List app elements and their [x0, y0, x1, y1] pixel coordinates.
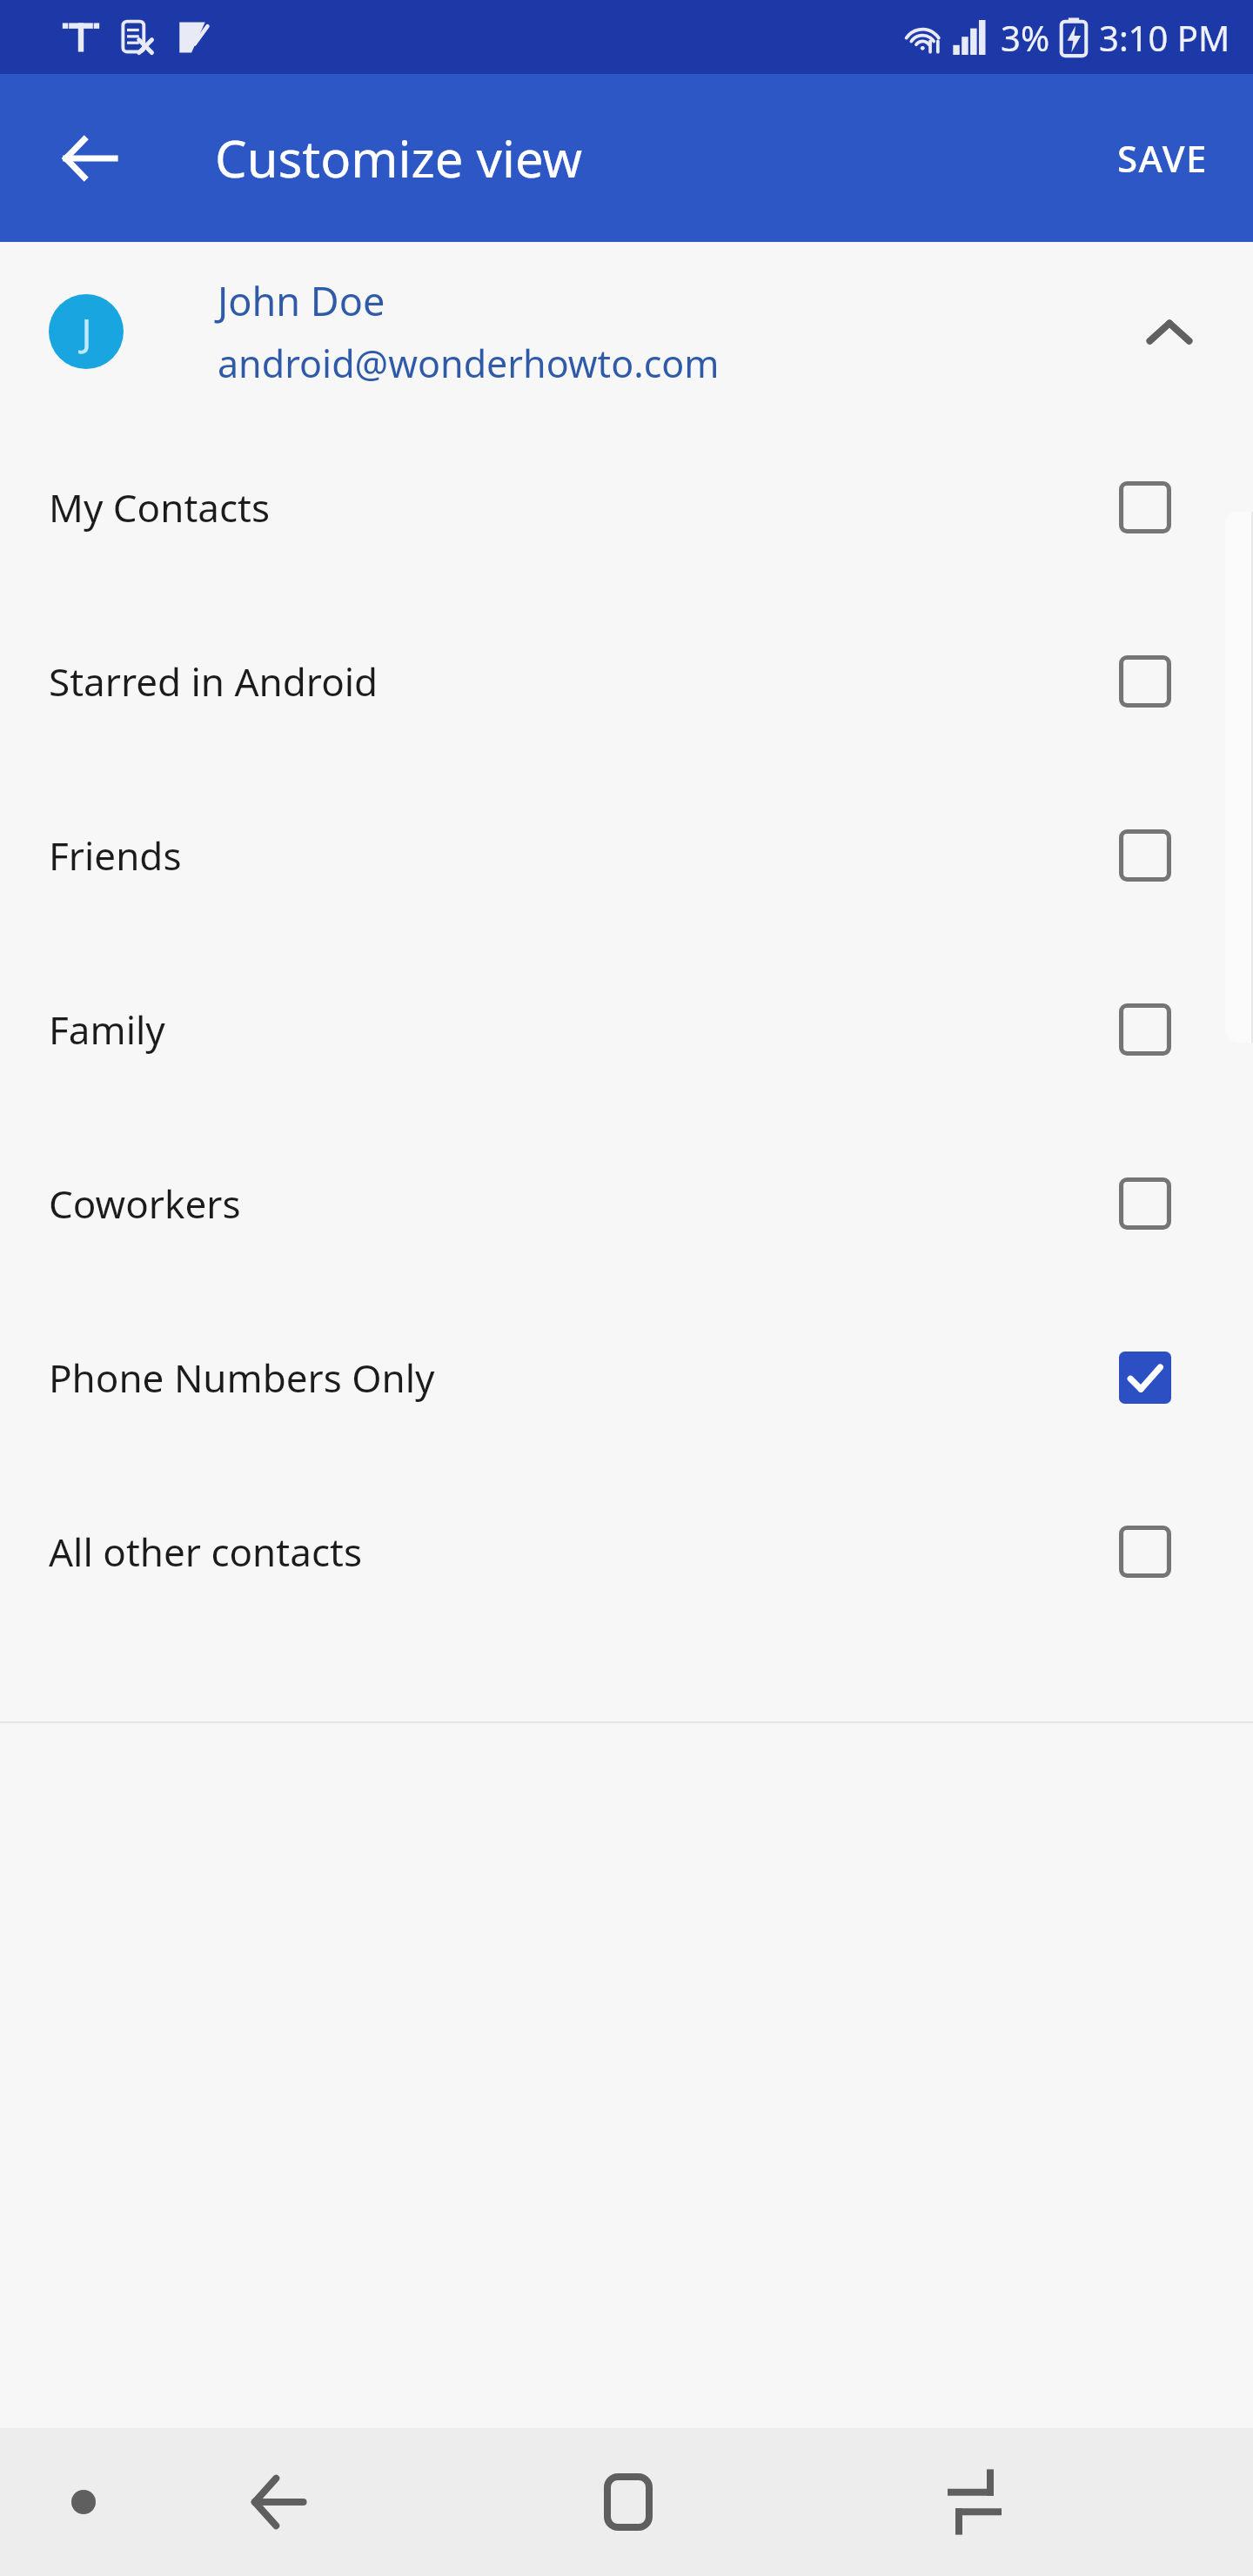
button[interactable]: All other contacts: [0, 1465, 1253, 1639]
staticText: J: [81, 305, 92, 358]
button[interactable]: Coworkers: [0, 1117, 1253, 1291]
button[interactable]: Back: [219, 2443, 338, 2561]
staticText: All other contacts: [49, 1526, 362, 1578]
button[interactable]: Family: [0, 943, 1253, 1117]
staticText: John Doe: [218, 274, 385, 327]
staticText: android@wonderhowto.com: [218, 338, 720, 389]
button[interactable]: Assistant: [35, 2453, 132, 2551]
staticText: Family: [49, 1003, 165, 1056]
staticText: 3:10 PM: [1099, 14, 1230, 61]
staticText: SAVE: [1117, 133, 1208, 183]
button[interactable]: Phone Numbers Only: [0, 1291, 1253, 1465]
button[interactable]: Back: [42, 111, 137, 206]
button[interactable]: Recents: [915, 2443, 1034, 2561]
button[interactable]: SAVE: [1093, 114, 1232, 202]
staticText: Starred in Android: [49, 655, 379, 708]
button[interactable]: Collapse account: [1129, 292, 1209, 372]
button[interactable]: J: [0, 242, 1253, 420]
button[interactable]: Starred in Android: [0, 594, 1253, 768]
button[interactable]: My Contacts: [0, 420, 1253, 594]
staticText: Customize view: [215, 124, 583, 192]
button[interactable]: Friends: [0, 768, 1253, 943]
staticText: Friends: [49, 829, 182, 882]
staticText: 3%: [1001, 14, 1050, 61]
staticText: Coworkers: [49, 1177, 241, 1230]
staticText: My Contacts: [49, 481, 271, 533]
staticText: Phone Numbers Only: [49, 1352, 435, 1404]
button[interactable]: Home: [567, 2441, 689, 2563]
